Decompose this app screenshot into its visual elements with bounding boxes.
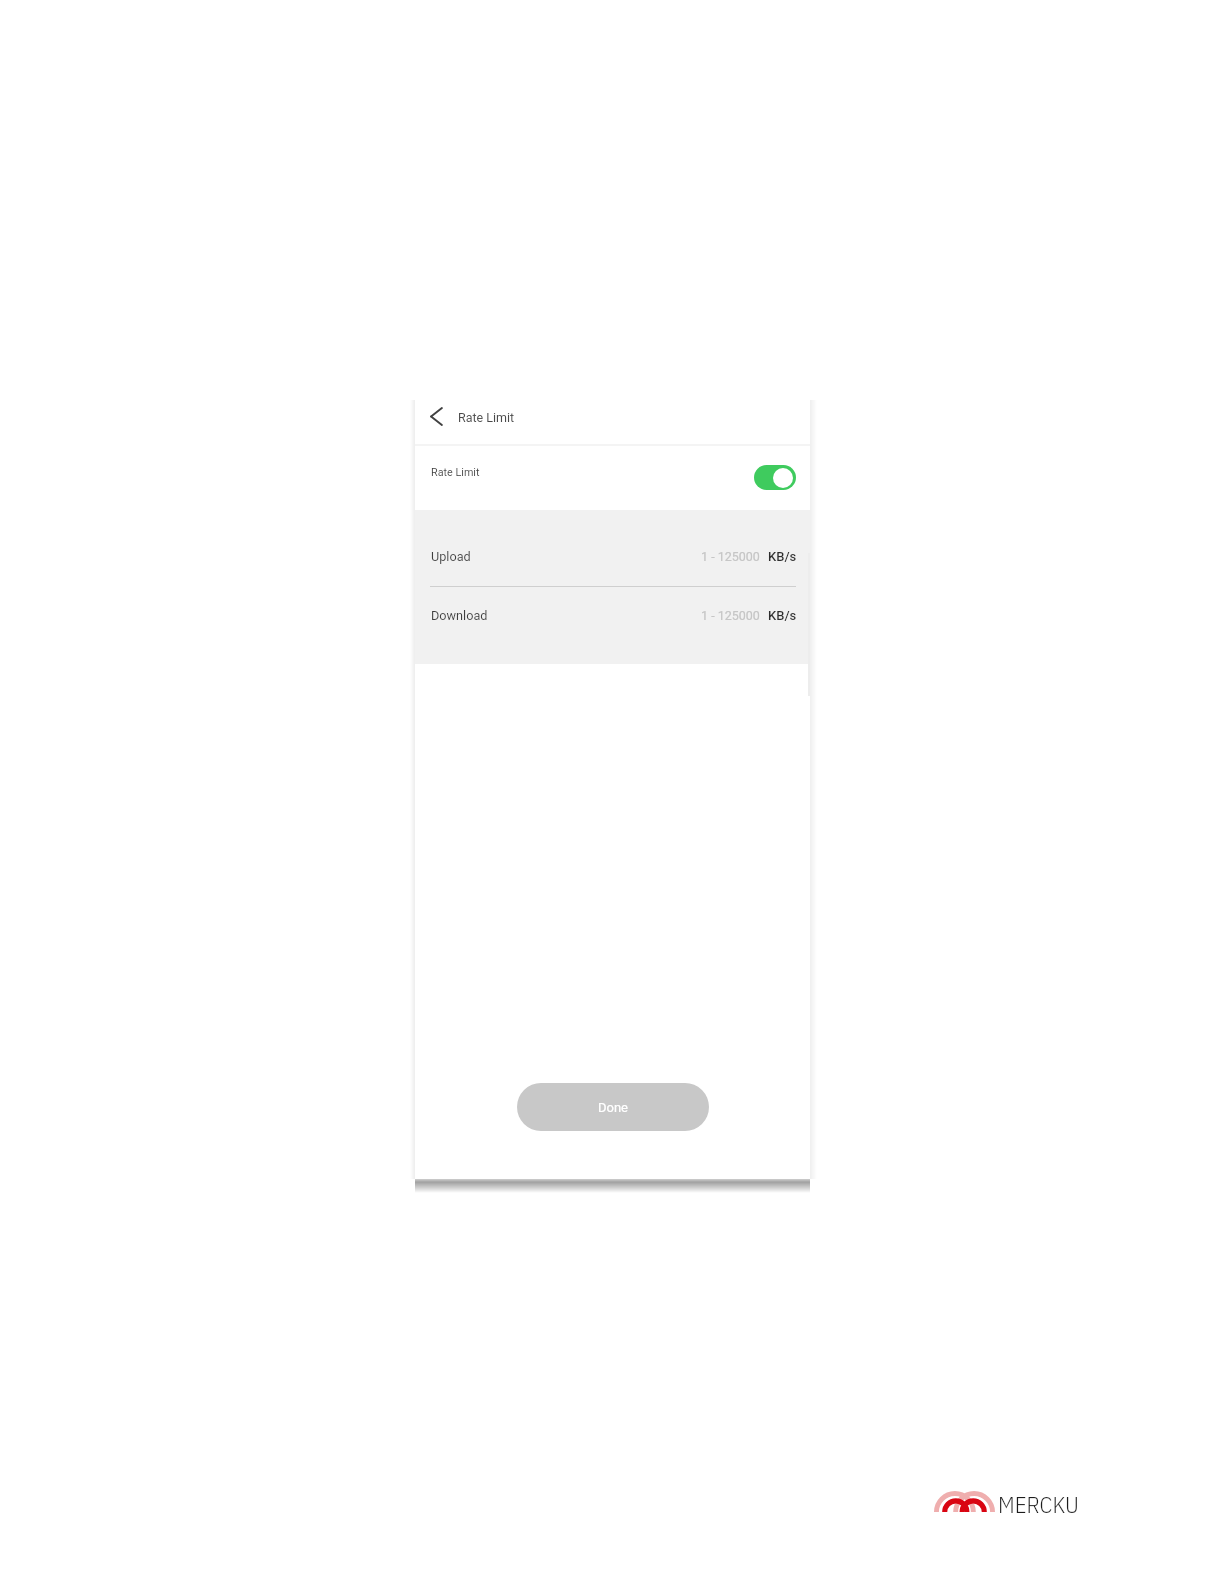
staticText: Rate Limit [431,466,480,479]
staticText: MERCKU [998,1489,1079,1517]
staticText: Rate Limit [458,410,515,425]
button[interactable]: Download [415,600,810,630]
button[interactable]: Back [420,396,464,443]
staticText: 1 - 125000 [701,549,760,564]
button[interactable]: Rate limit toggle [754,465,796,490]
staticText: 1 - 125000 [701,608,760,623]
staticText: KB/s [768,549,797,564]
staticText: Upload [431,549,471,564]
staticText: KB/s [768,608,797,623]
button[interactable]: Done [517,1083,709,1131]
staticText: Done [598,1100,629,1115]
button[interactable]: Upload [415,541,810,571]
button[interactable]: Rate Limit [415,444,810,510]
staticText: Download [431,608,488,623]
